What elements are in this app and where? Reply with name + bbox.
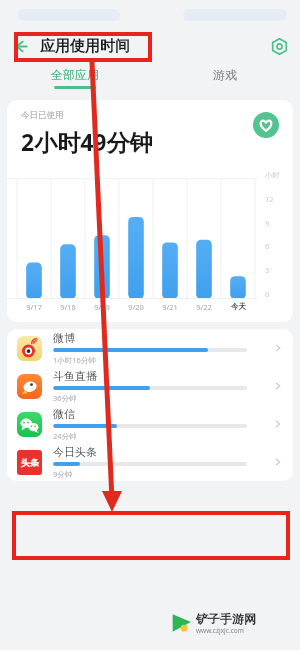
button[interactable]: 微博 [7,329,293,367]
staticText: 微信 [53,407,75,421]
staticText: 0 [265,289,270,299]
staticText: 今日头条 [53,445,97,459]
staticText: 小时 [265,171,280,180]
button[interactable]: 设置 [258,30,300,62]
button[interactable]: 斗鱼直播 [7,367,293,405]
button[interactable]: 微信 [7,405,293,443]
button[interactable]: 游戏 [150,62,300,94]
staticText: 24分钟 [53,431,77,441]
staticText: 斗鱼直播 [53,369,97,383]
staticText: 9/22 [196,302,212,312]
staticText: 全部应用 [51,67,99,82]
staticText: 微博 [53,331,75,345]
staticText: 9分钟 [53,469,73,479]
button[interactable]: 健康使用 [251,110,281,140]
staticText: 12 [265,194,274,204]
staticText: 铲子手游网 [196,611,256,626]
staticText: 1小时16分钟 [53,355,96,365]
button[interactable]: 头条 [7,443,293,481]
staticText: 今日已使用 [21,110,64,121]
staticText: 9/18 [60,302,76,312]
staticText: 6 [265,241,270,251]
staticText: 今天 [231,302,246,311]
staticText: 头条 [21,457,39,468]
button[interactable]: 全部应用 [0,62,150,94]
staticText: 36分钟 [53,393,77,403]
staticText: 游戏 [213,67,237,82]
staticText: 3 [265,265,270,275]
staticText: www.czjxjc.com [196,626,244,635]
staticText: 9 [265,218,270,228]
staticText: 9/17 [26,302,42,312]
staticText: 应用使用时间 [40,37,130,56]
staticText: 2小时49分钟 [21,126,153,157]
button[interactable]: 返回 [0,30,40,62]
staticText: 9/21 [162,302,178,312]
staticText: 9/19 [94,302,110,312]
staticText: 9/20 [128,302,144,312]
